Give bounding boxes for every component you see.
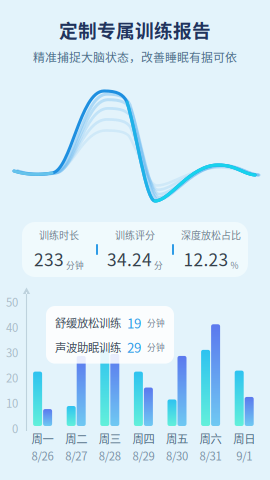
staticText: 深度放松占比 bbox=[181, 228, 241, 242]
staticText: 训练评分 bbox=[115, 228, 155, 242]
staticText: 精准捕捉大脑状态，改善睡眠有据可依 bbox=[33, 48, 237, 65]
staticText: 分钟 bbox=[147, 316, 165, 329]
staticText: 周五 bbox=[166, 430, 188, 446]
staticText: 训练时长 bbox=[39, 228, 79, 242]
staticText: 周三 bbox=[99, 430, 121, 446]
staticText: 29 bbox=[127, 337, 141, 357]
staticText: 8/26 bbox=[32, 447, 54, 464]
staticText: 10 bbox=[6, 395, 18, 411]
staticText: 233 bbox=[34, 246, 64, 271]
staticText: 周日 bbox=[233, 430, 255, 446]
staticText: 8/30 bbox=[166, 447, 188, 464]
staticText: 30 bbox=[6, 344, 18, 360]
staticText: 19 bbox=[127, 313, 141, 332]
staticText: 9/1 bbox=[236, 447, 252, 464]
staticText: 定制专属训练报告 bbox=[59, 16, 211, 43]
staticText: 8/29 bbox=[132, 447, 154, 464]
staticText: 周六 bbox=[200, 430, 222, 446]
staticText: % bbox=[230, 259, 238, 271]
staticText: 12.23 bbox=[183, 246, 228, 271]
staticText: 周四 bbox=[132, 430, 154, 446]
staticText: 舒缓放松训练 bbox=[55, 314, 121, 331]
staticText: 分钟 bbox=[147, 341, 165, 353]
staticText: 周二 bbox=[65, 430, 87, 446]
staticText: 40 bbox=[6, 319, 18, 335]
staticText: 20 bbox=[6, 369, 18, 386]
staticText: 8/31 bbox=[200, 447, 222, 464]
staticText: 分钟 bbox=[66, 259, 84, 271]
staticText: 8/27 bbox=[65, 447, 87, 464]
staticText: 0 bbox=[12, 420, 18, 436]
staticText: 8/28 bbox=[99, 447, 121, 464]
staticText: 周一 bbox=[32, 430, 54, 446]
staticText: 50 bbox=[6, 293, 18, 310]
staticText: 声波助眠训练 bbox=[55, 339, 121, 355]
staticText: 分 bbox=[154, 259, 163, 271]
staticText: 34.24 bbox=[107, 246, 152, 271]
